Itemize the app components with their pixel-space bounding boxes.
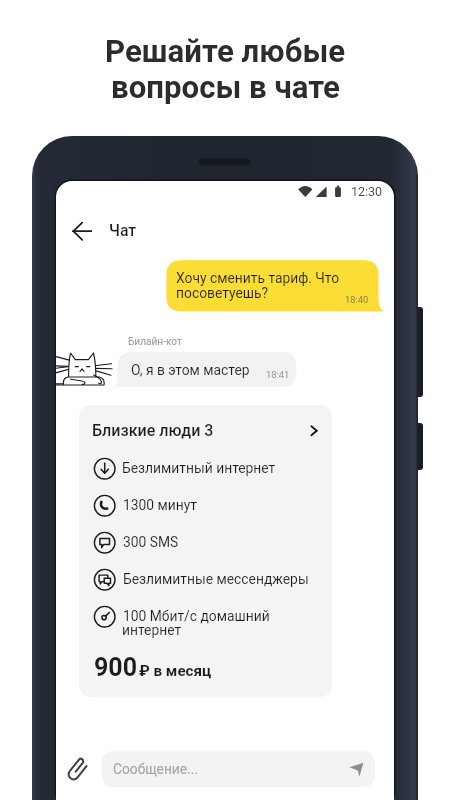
staticText: Близкие люди 3 [92,421,214,440]
staticText: Безлимитные мессенджеры [123,571,309,587]
staticText: О, я в этом мастер [131,362,250,378]
button[interactable]: Attach file [64,754,94,784]
staticText: вопросы в чате [111,69,340,106]
staticText: Билайн-кот [128,336,182,348]
staticText: Чат [109,221,137,240]
staticText: Хочу сменить тариф. Что [176,270,340,286]
button[interactable]: Send [345,757,370,782]
button[interactable] [102,751,375,787]
staticText: Безлимитный интернет [122,460,276,476]
staticText: Сообщение... [113,761,198,777]
staticText: интернет [122,622,182,638]
button[interactable] [79,405,332,697]
staticText: 100 Мбит/с домашний [123,608,270,624]
staticText: ₽ в месяц [139,662,212,680]
staticText: 18:41 [266,369,290,380]
staticText: 1300 минут [123,497,198,513]
staticText: посоветуешь? [176,285,269,301]
staticText: 300 SMS [123,534,179,550]
staticText: Решайте любые [105,33,346,70]
staticText: 900 [94,653,138,682]
staticText: 18:40 [345,294,369,305]
button[interactable]: Back [72,214,108,250]
staticText: 12:30 [351,184,383,199]
